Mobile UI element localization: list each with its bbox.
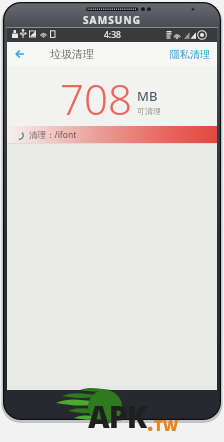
staticText: 4:38 xyxy=(104,29,121,41)
staticText: . xyxy=(147,407,154,437)
staticText: 垃圾清理 xyxy=(50,47,94,61)
button[interactable]: Back xyxy=(7,42,33,66)
staticText: TW xyxy=(154,415,179,435)
staticText: SAMSUNG xyxy=(83,13,141,27)
staticText: 708 xyxy=(60,70,132,127)
staticText: 隱私清理 xyxy=(170,48,210,61)
staticText: 可清理 xyxy=(137,106,161,116)
staticText: APK xyxy=(88,396,147,437)
staticText: 清理：/ifont xyxy=(29,129,77,141)
button[interactable]: 清理：/ifont xyxy=(7,126,217,143)
staticText: MB xyxy=(137,87,158,105)
button[interactable]: 隱私清理 xyxy=(163,44,217,65)
